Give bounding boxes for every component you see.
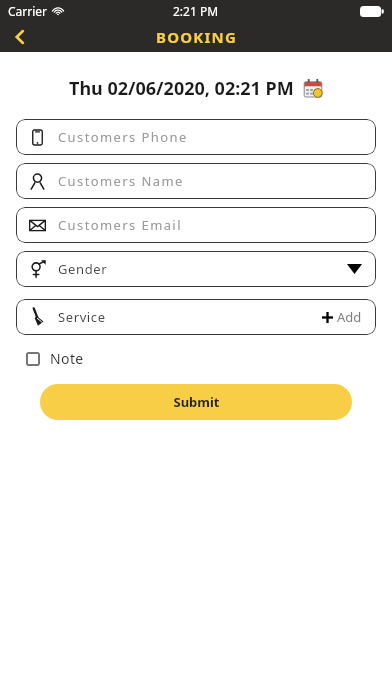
button[interactable]: Back: [0, 22, 40, 52]
staticText: Customers Name: [58, 172, 184, 190]
staticText: Carrier: [8, 3, 48, 19]
button[interactable]: Customers Name: [16, 163, 376, 199]
staticText: Add: [337, 308, 362, 326]
button[interactable]: Customers Phone: [16, 119, 376, 155]
staticText: Customers Phone: [58, 128, 188, 146]
button[interactable]: Gender: [16, 251, 376, 287]
staticText: Customers Email: [58, 216, 182, 234]
staticText: BOOKING: [156, 27, 237, 47]
button[interactable]: Submit: [40, 384, 352, 420]
staticText: 2:21 PM: [173, 3, 219, 19]
staticText: Gender: [58, 260, 347, 278]
button[interactable]: Pick date: [302, 78, 324, 100]
staticText: Submit: [173, 393, 220, 411]
staticText: Service: [58, 308, 322, 326]
staticText: Thu 02/06/2020, 02:21 PM: [69, 76, 294, 101]
button[interactable]: Customers Email: [16, 207, 376, 243]
button[interactable]: Note: [26, 349, 84, 368]
button[interactable]: Service: [16, 299, 376, 335]
staticText: Note: [50, 349, 84, 368]
